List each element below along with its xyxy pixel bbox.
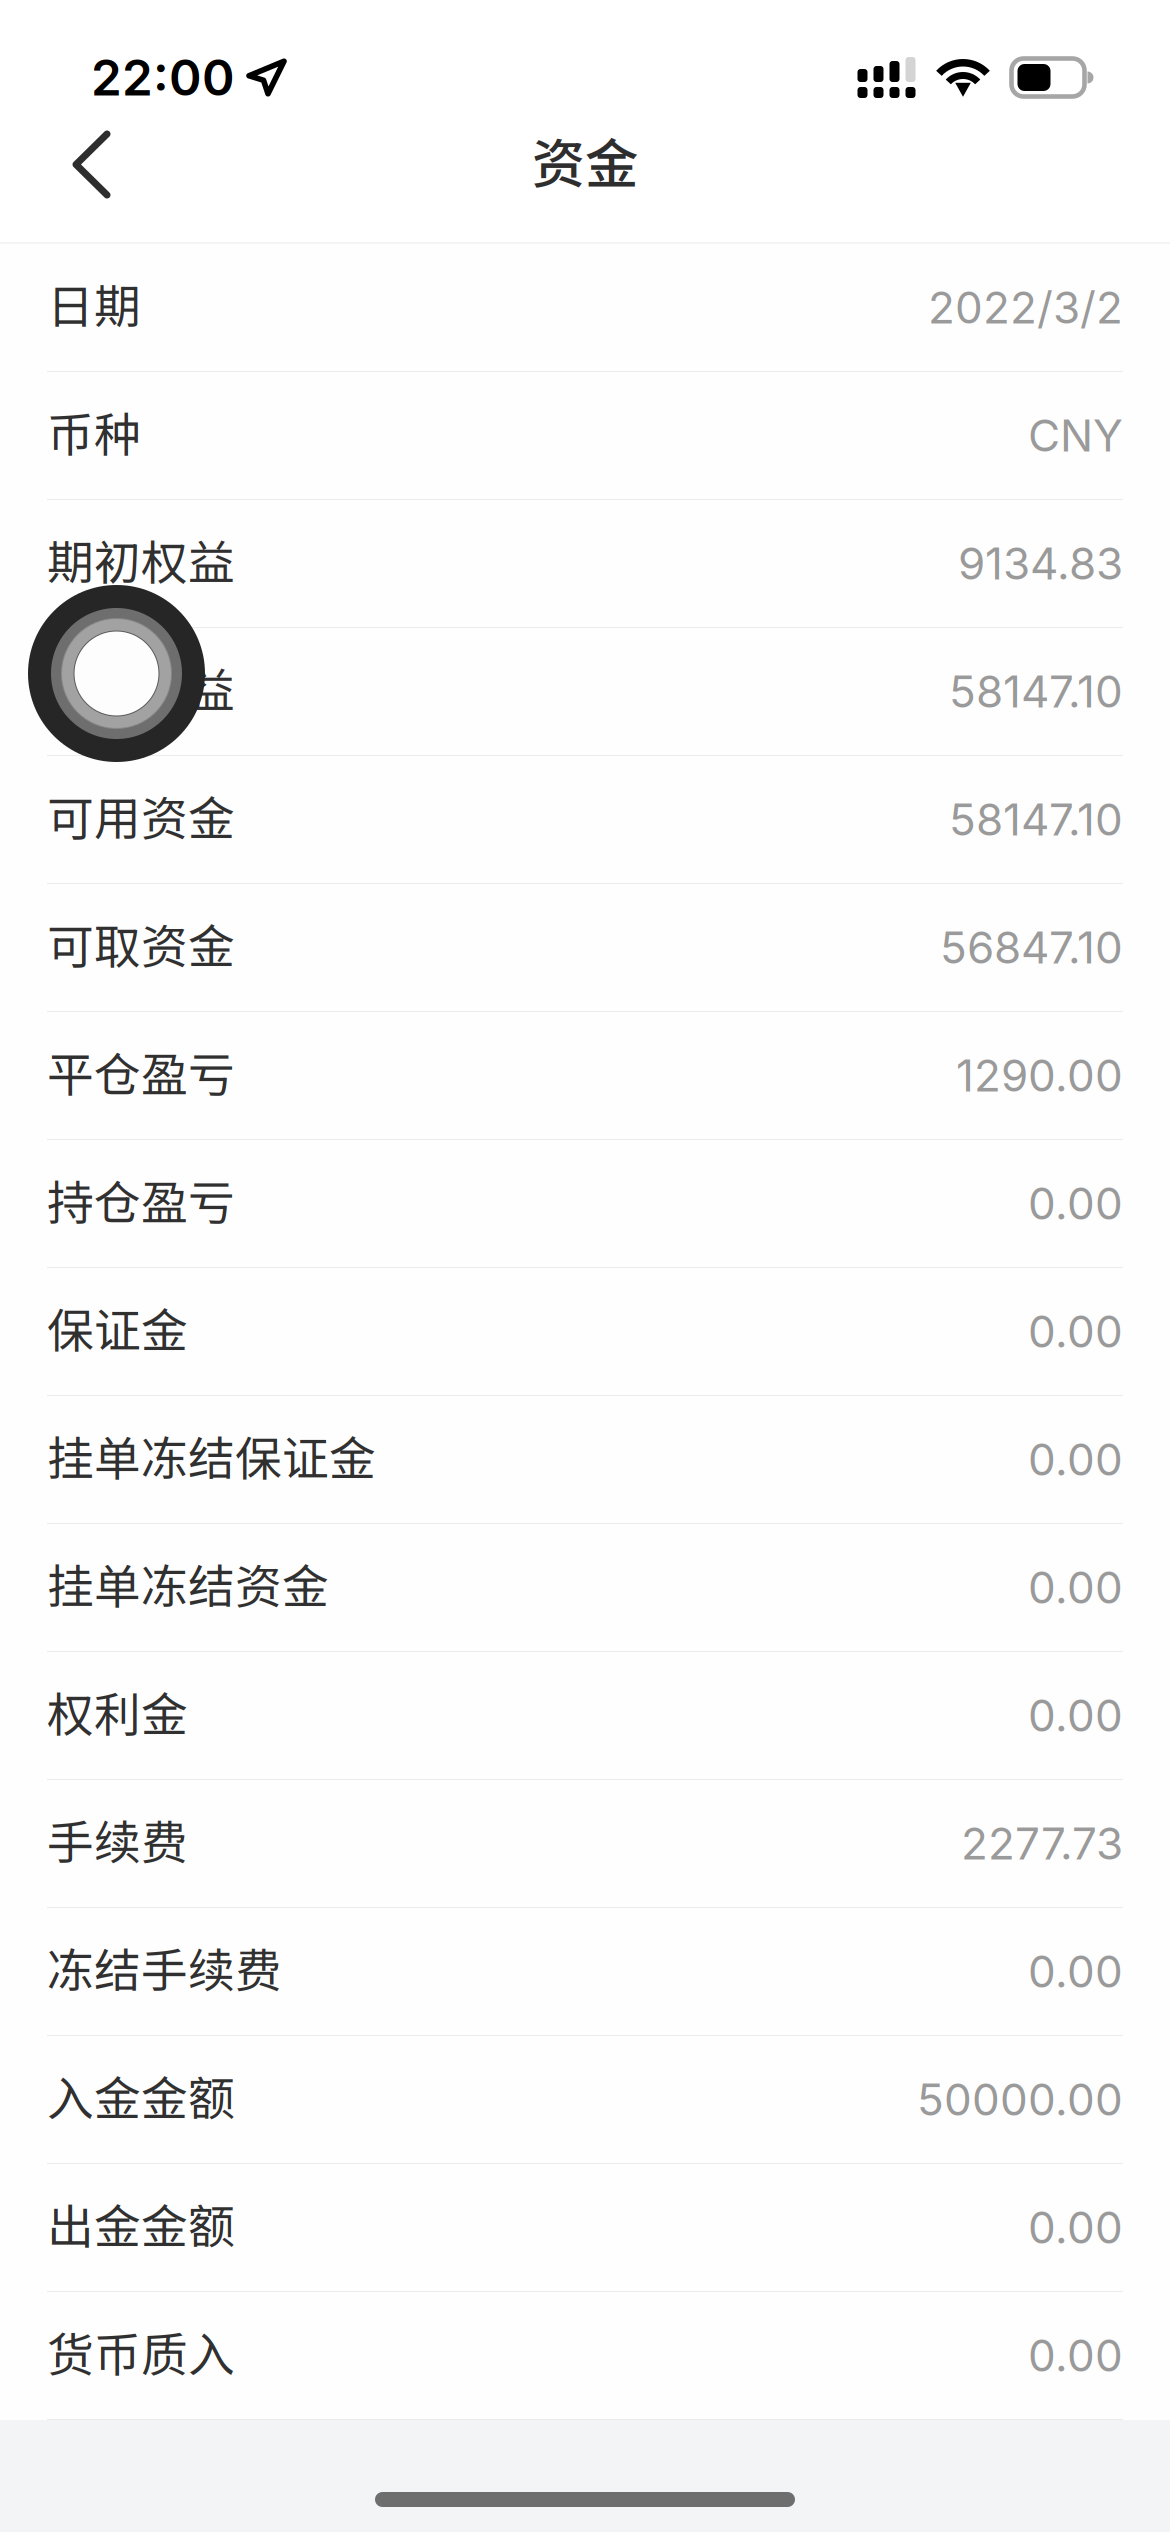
staticText: 9134.83 bbox=[958, 537, 1123, 590]
staticText: 0.00 bbox=[1028, 2201, 1123, 2254]
staticText: 币种 bbox=[47, 398, 141, 465]
staticText: 0.00 bbox=[1028, 1561, 1123, 1614]
staticText: 当前权益 bbox=[47, 654, 235, 721]
staticText: 挂单冻结资金 bbox=[47, 1550, 329, 1617]
staticText: 58147.10 bbox=[949, 793, 1123, 846]
staticText: 0.00 bbox=[1028, 1305, 1123, 1358]
staticText: 挂单冻结保证金 bbox=[47, 1422, 376, 1489]
staticText: 期初权益 bbox=[47, 526, 235, 593]
staticText: 0.00 bbox=[1028, 1945, 1123, 1998]
staticText: 权利金 bbox=[47, 1678, 188, 1745]
button[interactable]: 挂单冻结资金 bbox=[0, 1524, 1170, 1652]
staticText: 0.00 bbox=[1028, 1433, 1123, 1486]
button[interactable]: AssistiveTouch bbox=[28, 585, 205, 762]
staticText: 货币质入 bbox=[47, 2318, 235, 2385]
staticText: 56847.10 bbox=[940, 921, 1123, 974]
button[interactable]: 手续费 bbox=[0, 1780, 1170, 1908]
staticText: 2277.73 bbox=[961, 1817, 1123, 1870]
staticText: 可取资金 bbox=[47, 910, 235, 977]
staticText: 保证金 bbox=[47, 1294, 188, 1361]
staticText: 50000.00 bbox=[917, 2073, 1123, 2126]
staticText: CNY bbox=[1028, 409, 1123, 462]
button[interactable]: 货币质入 bbox=[0, 2292, 1170, 2420]
staticText: 0.00 bbox=[1028, 2329, 1123, 2382]
button[interactable]: 币种 bbox=[0, 372, 1170, 500]
button[interactable]: 当前权益 bbox=[0, 628, 1170, 756]
staticText: 手续费 bbox=[47, 1806, 188, 1873]
button[interactable]: 日期 bbox=[0, 244, 1170, 372]
staticText: 0.00 bbox=[1028, 1689, 1123, 1742]
button[interactable]: 保证金 bbox=[0, 1268, 1170, 1396]
staticText: 可用资金 bbox=[47, 782, 235, 849]
staticText: 资金 bbox=[532, 121, 638, 199]
button[interactable]: 可用资金 bbox=[0, 756, 1170, 884]
staticText: 日期 bbox=[47, 270, 141, 337]
staticText: 平仓盈亏 bbox=[47, 1038, 235, 1105]
staticText: 22:00 bbox=[91, 48, 235, 107]
button[interactable]: 权利金 bbox=[0, 1652, 1170, 1780]
button[interactable]: 期初权益 bbox=[0, 500, 1170, 628]
staticText: 入金金额 bbox=[47, 2062, 235, 2129]
button[interactable]: 持仓盈亏 bbox=[0, 1140, 1170, 1268]
button[interactable]: 挂单冻结保证金 bbox=[0, 1396, 1170, 1524]
staticText: 0.00 bbox=[1028, 1177, 1123, 1230]
staticText: 58147.10 bbox=[949, 665, 1123, 718]
staticText: 2022/3/2 bbox=[928, 281, 1123, 334]
staticText: 持仓盈亏 bbox=[47, 1166, 235, 1233]
staticText: 1290.00 bbox=[956, 1049, 1123, 1102]
button[interactable]: 平仓盈亏 bbox=[0, 1012, 1170, 1140]
button[interactable]: 入金金额 bbox=[0, 2036, 1170, 2164]
staticText: 出金金额 bbox=[47, 2190, 235, 2257]
button[interactable]: 冻结手续费 bbox=[0, 1908, 1170, 2036]
staticText: 冻结手续费 bbox=[47, 1934, 282, 2001]
button[interactable]: 出金金额 bbox=[0, 2164, 1170, 2292]
button[interactable]: 可取资金 bbox=[0, 884, 1170, 1012]
button[interactable]: Back bbox=[0, 112, 151, 214]
